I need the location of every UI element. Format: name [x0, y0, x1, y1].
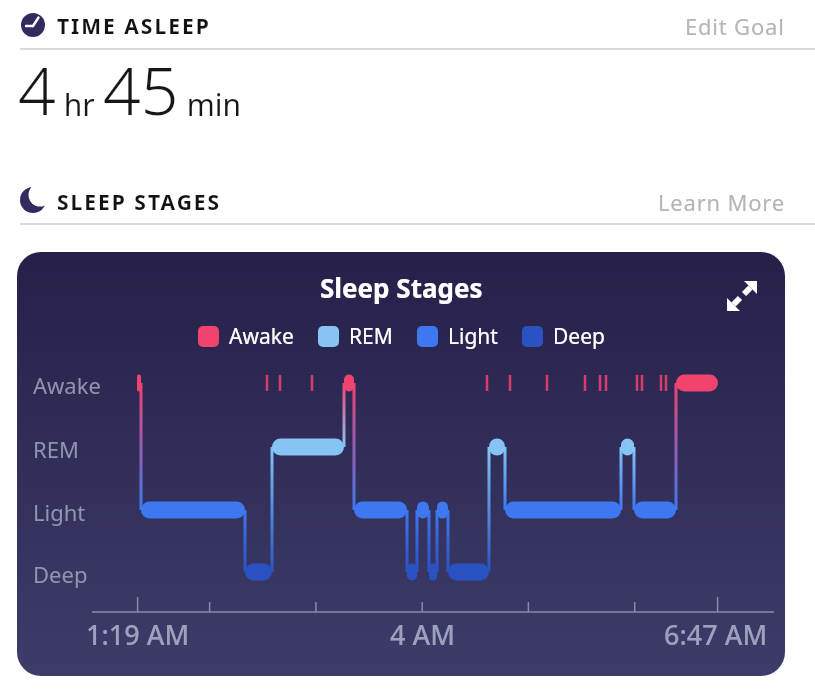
staticText: 6:47 AM	[664, 616, 768, 653]
staticText: Deep	[33, 559, 88, 589]
staticText: REM	[349, 322, 393, 351]
staticText: 4	[18, 44, 56, 134]
staticText: min	[179, 84, 242, 125]
staticText: SLEEP STAGES	[57, 188, 222, 217]
button[interactable]	[725, 279, 759, 313]
button[interactable]: Deep	[522, 322, 605, 351]
button[interactable]: Awake	[198, 322, 294, 351]
staticText: Light	[448, 322, 498, 351]
staticText: 45	[103, 44, 179, 134]
staticText: TIME ASLEEP	[57, 12, 211, 41]
button[interactable]: Learn More	[658, 187, 785, 217]
staticText: 1:19 AM	[86, 616, 190, 653]
button[interactable]: Edit Goal	[685, 11, 785, 41]
staticText: REM	[33, 434, 79, 464]
staticText: Light	[33, 497, 86, 527]
staticText: Sleep Stages	[320, 270, 483, 305]
staticText: Awake	[33, 370, 101, 400]
button[interactable]: Light	[417, 322, 498, 351]
staticText: Deep	[553, 322, 605, 351]
button[interactable]: Sleep Stages	[17, 252, 785, 676]
staticText: hr	[56, 84, 103, 125]
staticText: 4 AM	[390, 616, 455, 653]
button[interactable]: REM	[318, 322, 393, 351]
staticText: Awake	[229, 322, 294, 351]
